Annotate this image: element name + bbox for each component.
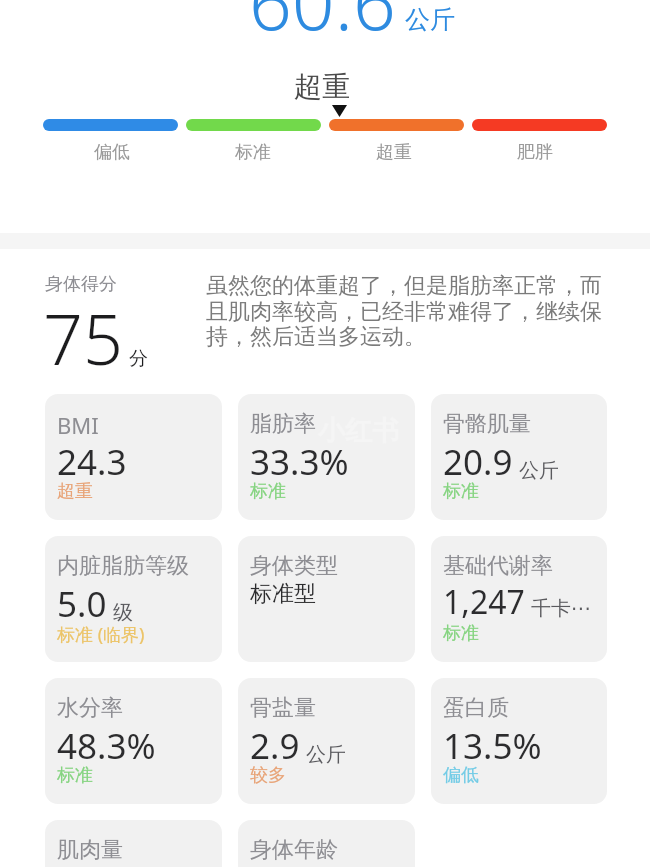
staticText: 24.3 (57, 438, 127, 486)
button[interactable]: 骨盐量 (238, 678, 415, 804)
staticText: 千卡⋯ (531, 596, 591, 621)
staticText: 标准型 (250, 580, 316, 608)
staticText: 肌肉量 (57, 836, 123, 864)
button[interactable]: 内脏脂肪等级 (45, 536, 222, 662)
staticText: 虽然您的体重超了，但是脂肪率正常，而且肌肉率较高，已经非常难得了，继续保持，然后… (206, 272, 606, 350)
staticText: 公斤 (306, 742, 346, 767)
staticText: 超重 (294, 69, 350, 104)
button[interactable]: 身体年龄 (238, 820, 415, 867)
staticText: 标准 (250, 480, 286, 503)
staticText: 偏低 (94, 141, 130, 164)
staticText: 标准 (临界) (57, 622, 145, 647)
staticText: 分 (129, 347, 148, 371)
staticText: 基础代谢率 (443, 552, 553, 580)
staticText: 公斤 (519, 458, 559, 483)
staticText: 偏低 (443, 764, 479, 787)
staticText: 骨盐量 (250, 694, 316, 722)
staticText: 48.3% (57, 722, 156, 770)
staticText: 脂肪率 (250, 410, 316, 438)
staticText: BMI (57, 410, 99, 440)
button[interactable]: 骨骼肌量 (431, 394, 607, 520)
staticText: 13.5% (443, 722, 542, 770)
staticText: 水分率 (57, 694, 123, 722)
staticText: 身体类型 (250, 552, 338, 580)
staticText: 内脏脂肪等级 (57, 552, 189, 580)
staticText: 1,247 (443, 580, 525, 624)
staticText: 标准 (235, 141, 271, 164)
staticText: 肥胖 (517, 141, 553, 164)
staticText: 2.9 (250, 722, 300, 770)
staticText: 级 (113, 600, 133, 625)
staticText: 标准 (443, 480, 479, 503)
button[interactable]: 脂肪率 (238, 394, 415, 520)
button[interactable]: 水分率 (45, 678, 222, 804)
staticText: 身体年龄 (250, 836, 338, 864)
staticText: 超重 (376, 141, 412, 164)
staticText: 20.9 (443, 438, 513, 486)
staticText: 较多 (250, 764, 286, 787)
button[interactable]: 身体类型 (238, 536, 415, 662)
staticText: 骨骼肌量 (443, 410, 531, 438)
button[interactable]: 肌肉量 (45, 820, 222, 867)
staticText: 蛋白质 (443, 694, 509, 722)
staticText: 75 (43, 290, 123, 385)
staticText: 标准 (57, 764, 93, 787)
staticText: 公斤 (405, 4, 455, 35)
staticText: 标准 (443, 622, 479, 645)
staticText: 5.0 (57, 580, 107, 628)
button[interactable]: 基础代谢率 (431, 536, 607, 662)
staticText: 身体得分 (45, 273, 117, 296)
staticText: 超重 (57, 480, 93, 503)
button[interactable]: 蛋白质 (431, 678, 607, 804)
staticText: 33.3% (250, 438, 349, 486)
staticText: 60.6 (249, 0, 396, 52)
button[interactable]: BMI (45, 394, 222, 520)
